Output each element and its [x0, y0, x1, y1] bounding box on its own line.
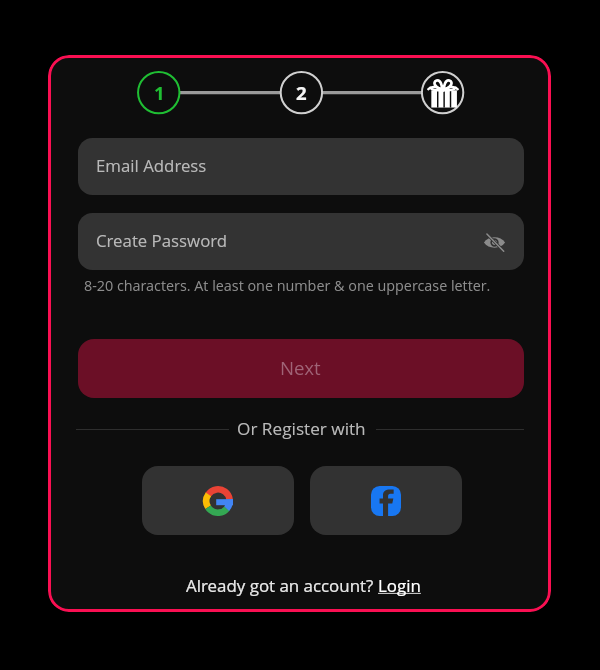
staticText: Or Register with: [237, 417, 366, 440]
staticText: 1: [154, 80, 165, 105]
staticText: Create Password: [96, 229, 228, 252]
button[interactable]: Step 2: [286, 77, 316, 107]
staticText: Email Address: [96, 154, 207, 177]
other: Rewards: [427, 77, 459, 109]
button[interactable]: Show password: [477, 225, 511, 259]
button[interactable]: Next: [78, 339, 524, 398]
staticText: 2: [296, 80, 307, 105]
staticText: Already got an account?: [186, 574, 378, 597]
button[interactable]: Create Password: [78, 213, 524, 270]
button[interactable]: Register with Google: [142, 466, 294, 535]
button[interactable]: Step 1: [144, 77, 174, 107]
staticText: 8-20 characters. At least one number & o…: [84, 276, 491, 296]
button[interactable]: Register with Facebook: [310, 466, 462, 535]
staticText: Next: [280, 355, 321, 380]
button[interactable]: Email Address: [78, 138, 524, 195]
button[interactable]: Login: [378, 574, 421, 597]
